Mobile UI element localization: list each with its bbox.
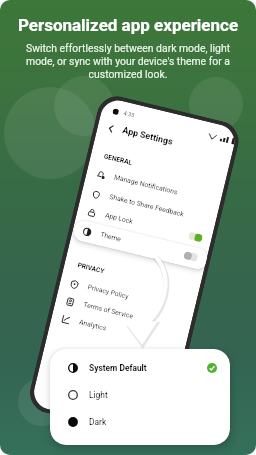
staticText: Analytics: [78, 318, 107, 333]
staticText: Terms of Service: [82, 301, 134, 320]
staticText: Switch effortlessly between dark mode, l…: [22, 42, 234, 80]
staticText: Personalized app experience: [8, 15, 248, 35]
button[interactable]: Analytics: [50, 306, 188, 357]
staticText: PRIVACY: [77, 261, 106, 276]
button[interactable]: App Lock: [76, 199, 213, 251]
staticText: Shake to Share Feedback: [109, 193, 185, 219]
button[interactable]: Privacy Policy: [58, 271, 196, 322]
button[interactable]: Terms of Service: [54, 288, 192, 340]
staticText: Light: [89, 390, 108, 400]
button[interactable]: Shake to Share Feedback: [80, 180, 218, 232]
button[interactable]: Back: [101, 118, 120, 138]
button[interactable]: Theme: [71, 218, 209, 270]
staticText: Manage Notifications: [113, 173, 178, 196]
staticText: App Lock: [104, 211, 134, 226]
button[interactable]: Light: [50, 382, 230, 408]
staticText: System Default: [89, 363, 147, 373]
staticText: Dark: [89, 417, 107, 427]
button[interactable]: Dark: [50, 409, 230, 435]
staticText: App Settings: [121, 125, 174, 147]
staticText: GENERAL: [103, 152, 133, 167]
button[interactable]: Manage Notifications: [85, 161, 223, 213]
staticText: 4:33: [123, 110, 135, 119]
staticText: Privacy Policy: [87, 283, 129, 301]
button[interactable]: System Default: [50, 355, 230, 381]
staticText: Theme: [99, 231, 122, 243]
